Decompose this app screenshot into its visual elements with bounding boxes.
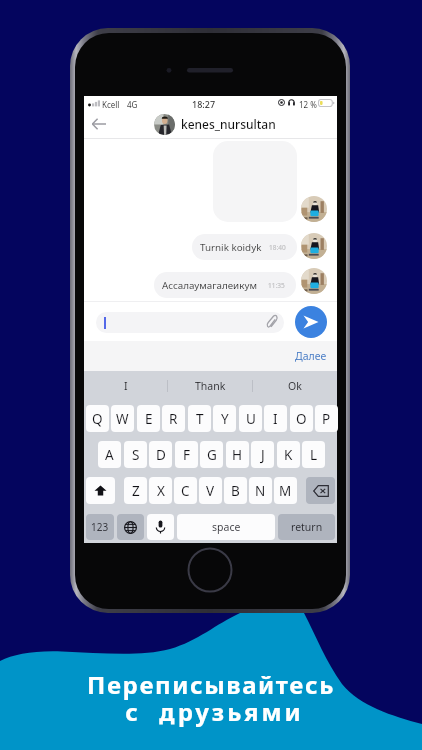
staticText: Kcell — [102, 99, 120, 110]
staticText: 123 — [91, 520, 109, 534]
other: Attach file — [267, 316, 277, 329]
staticText: Ассалаумагалеикум — [162, 279, 257, 292]
staticText: Z — [132, 482, 140, 500]
button[interactable]: D — [149, 441, 172, 468]
button[interactable]: Switch language — [117, 514, 144, 540]
staticText: K — [284, 446, 293, 464]
staticText: 18:40 — [269, 243, 286, 252]
button[interactable]: I — [264, 405, 287, 432]
button[interactable]: Voice input — [147, 514, 174, 540]
staticText: T — [196, 410, 204, 428]
staticText: H — [232, 446, 243, 464]
button[interactable]: S — [124, 441, 147, 468]
button[interactable]: K — [277, 441, 300, 468]
staticText: Q — [92, 410, 103, 428]
staticText: X — [157, 482, 165, 500]
button[interactable]: J — [251, 441, 274, 468]
staticText: D — [156, 446, 166, 464]
staticText: J — [261, 446, 265, 464]
staticText: Далее — [295, 349, 327, 363]
staticText: A — [105, 446, 114, 464]
button[interactable]: L — [302, 441, 325, 468]
staticText: Turnik koidyk — [200, 241, 262, 254]
button[interactable]: V — [199, 477, 222, 504]
button[interactable]: C — [174, 477, 197, 504]
button[interactable]: Backspace — [306, 477, 335, 504]
staticText: U — [246, 410, 256, 428]
staticText: G — [207, 446, 217, 464]
button[interactable]: Attach file — [96, 312, 284, 333]
staticText: W — [116, 410, 129, 428]
staticText: E — [145, 410, 153, 428]
staticText: space — [212, 520, 241, 534]
staticText: S — [132, 446, 140, 464]
button[interactable]: B — [224, 477, 247, 504]
button[interactable]: W — [111, 405, 134, 432]
staticText: Ok — [288, 379, 302, 393]
button[interactable]: Z — [124, 477, 147, 504]
button[interactable]: N — [249, 477, 272, 504]
staticText: 12 % — [299, 99, 317, 110]
button[interactable]: P — [315, 405, 338, 432]
staticText: N — [255, 482, 266, 500]
staticText: Переписывайтесь — [87, 668, 335, 701]
staticText: F — [183, 446, 191, 464]
button[interactable]: Далее — [287, 345, 337, 367]
button[interactable]: Thank — [168, 371, 252, 401]
button[interactable]: A — [98, 441, 121, 468]
staticText: C — [181, 482, 190, 500]
button[interactable]: Ассалаумагалеикум — [154, 272, 296, 298]
staticText: 11:35 — [268, 281, 285, 290]
button[interactable]: Y — [213, 405, 236, 432]
staticText: return — [291, 520, 323, 534]
button[interactable]: H — [226, 441, 249, 468]
button[interactable]: Q — [86, 405, 109, 432]
button[interactable]: R — [162, 405, 185, 432]
button[interactable]: E — [137, 405, 160, 432]
staticText: 4G — [127, 99, 138, 110]
staticText: B — [231, 482, 240, 500]
button[interactable]: Turnik koidyk — [192, 234, 297, 260]
button[interactable]: Ok — [253, 371, 337, 401]
button[interactable]: 123 — [86, 514, 114, 540]
staticText: Y — [221, 410, 229, 428]
button[interactable]: space — [177, 514, 275, 540]
staticText: 18:27 — [192, 98, 216, 110]
button[interactable]: Back — [84, 110, 114, 138]
button[interactable]: U — [239, 405, 262, 432]
staticText: L — [310, 446, 318, 464]
button[interactable]: Send — [295, 306, 327, 338]
staticText: kenes_nursultan — [181, 116, 276, 132]
button[interactable]: X — [149, 477, 172, 504]
button[interactable]: T — [188, 405, 211, 432]
staticText: O — [296, 410, 307, 428]
staticText: Thank — [195, 379, 226, 393]
button[interactable]: G — [200, 441, 223, 468]
button[interactable]: O — [290, 405, 313, 432]
staticText: M — [279, 482, 292, 500]
staticText: R — [169, 410, 178, 428]
button[interactable]: M — [274, 477, 297, 504]
staticText: с друзьями — [125, 695, 304, 728]
button[interactable]: return — [278, 514, 335, 540]
staticText: I — [273, 410, 278, 428]
button[interactable]: F — [175, 441, 198, 468]
staticText: I — [124, 379, 128, 393]
button[interactable]: Shift — [86, 477, 115, 504]
staticText: V — [206, 482, 215, 500]
button[interactable]: I — [84, 371, 167, 401]
staticText: P — [322, 410, 331, 428]
